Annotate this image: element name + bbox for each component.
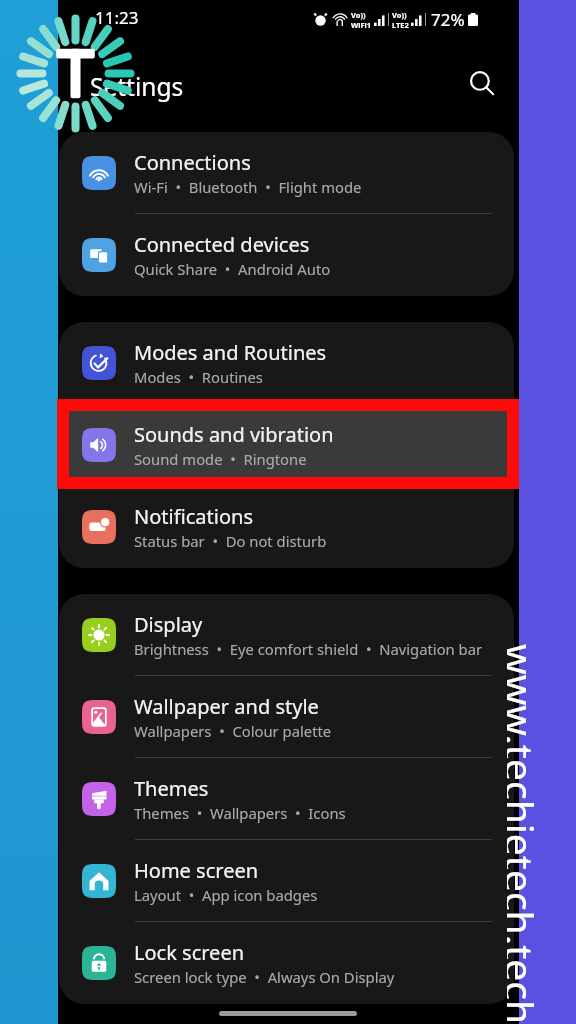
staticText: LTE2 <box>392 20 409 30</box>
staticText: Brightness • Eye comfort shield • Naviga… <box>134 639 483 659</box>
staticText: Modes and Routines <box>134 339 327 366</box>
button[interactable]: Home screen <box>59 840 514 922</box>
staticText: www.techietech.tech <box>507 644 547 1024</box>
button[interactable]: Notifications <box>59 486 514 568</box>
staticText: Quick Share • Android Auto <box>134 259 331 279</box>
button[interactable]: Display <box>59 594 514 676</box>
staticText: Screen lock type • Always On Display <box>134 967 395 987</box>
button[interactable]: Lock screen <box>59 922 514 1004</box>
button[interactable]: Modes and Routines <box>59 322 514 404</box>
button[interactable]: Connected devices <box>59 214 514 296</box>
staticText: Connected devices <box>134 231 310 258</box>
staticText: Themes • Wallpapers • Icons <box>134 803 346 823</box>
staticText: Vo)) <box>351 10 366 20</box>
staticText: Status bar • Do not disturb <box>134 531 327 551</box>
staticText: Home screen <box>134 857 259 884</box>
staticText: Vo)) <box>392 10 407 20</box>
staticText: Lock screen <box>134 939 245 966</box>
staticText: WiFi1 <box>351 20 372 30</box>
button[interactable]: Themes <box>59 758 514 840</box>
staticText: Layout • App icon badges <box>134 885 318 905</box>
staticText: Sounds and vibration <box>134 421 334 448</box>
staticText: Settings <box>90 70 184 103</box>
staticText: Notifications <box>134 503 253 530</box>
staticText: Themes <box>134 775 209 802</box>
staticText: Modes • Routines <box>134 367 263 387</box>
button[interactable]: Connections <box>59 132 514 214</box>
staticText: Wi-Fi • Bluetooth • Flight mode <box>134 177 362 197</box>
staticText: Wallpapers • Colour palette <box>134 721 332 741</box>
button[interactable]: Sounds and vibration <box>59 404 514 486</box>
staticText: Sound mode • Ringtone <box>134 449 307 469</box>
staticText: 72% <box>431 8 465 31</box>
staticText: Display <box>134 611 203 638</box>
staticText: 11:23 <box>95 6 139 29</box>
staticText: Wallpaper and style <box>134 693 319 720</box>
button[interactable]: Wallpaper and style <box>59 676 514 758</box>
staticText: Connections <box>134 149 251 176</box>
button[interactable]: Search <box>458 59 506 107</box>
